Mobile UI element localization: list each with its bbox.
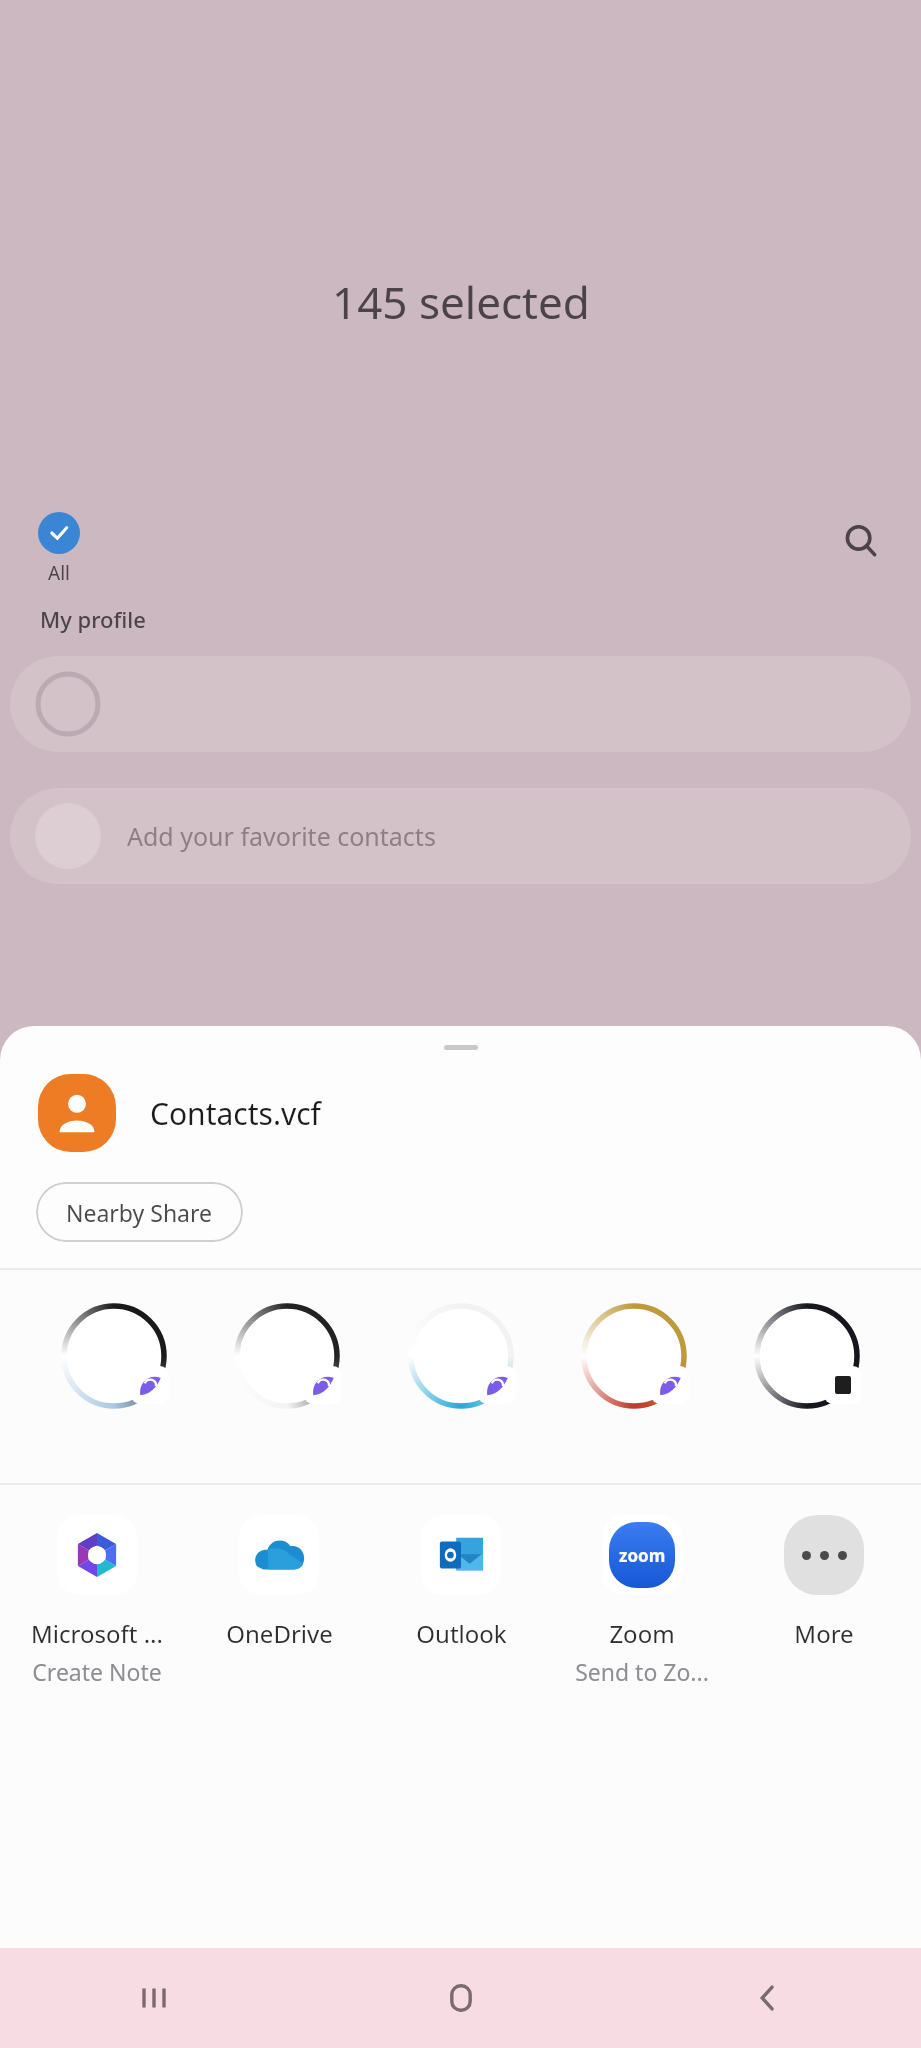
staticText: Send to Zo... [575,1656,709,1687]
button[interactable]: Contact [402,1298,520,1416]
staticText: OneDrive [226,1617,333,1650]
button[interactable]: Contacts.vcf [0,1056,921,1158]
button[interactable]: Contact [575,1298,693,1416]
staticText: Outlook [416,1617,507,1650]
staticText: Contacts.vcf [150,1093,321,1134]
button[interactable]: OneDrive [194,1515,364,1650]
staticText: zoom [619,1544,666,1567]
button[interactable]: zoom [557,1515,727,1687]
staticText: My profile [40,604,146,634]
button[interactable]: Home [307,1948,614,2048]
staticText: All [48,560,70,586]
button[interactable]: Contact [55,1298,173,1416]
staticText: More [794,1617,854,1650]
staticText: Add your favorite contacts [127,819,436,853]
staticText: Zoom [609,1617,675,1650]
button[interactable]: Contact [748,1298,866,1416]
staticText: Nearby Share [66,1197,213,1228]
staticText: Create Note [32,1656,162,1687]
button[interactable]: Contact [228,1298,346,1416]
button[interactable]: Search [833,513,889,569]
button[interactable]: More [739,1515,909,1650]
button[interactable]: Add your favorite contacts [10,788,911,884]
button[interactable]: Nearby Share [36,1182,243,1242]
button[interactable]: Back [614,1948,921,2048]
button[interactable]: Outlook [376,1515,546,1650]
staticText: Microsoft ... [31,1617,163,1650]
button[interactable]: All [30,510,88,588]
other: More [784,1515,864,1595]
button[interactable]: Microsoft ... [12,1515,182,1687]
staticText: 145 selected [332,272,590,332]
button[interactable]: Recents [0,1948,307,2048]
